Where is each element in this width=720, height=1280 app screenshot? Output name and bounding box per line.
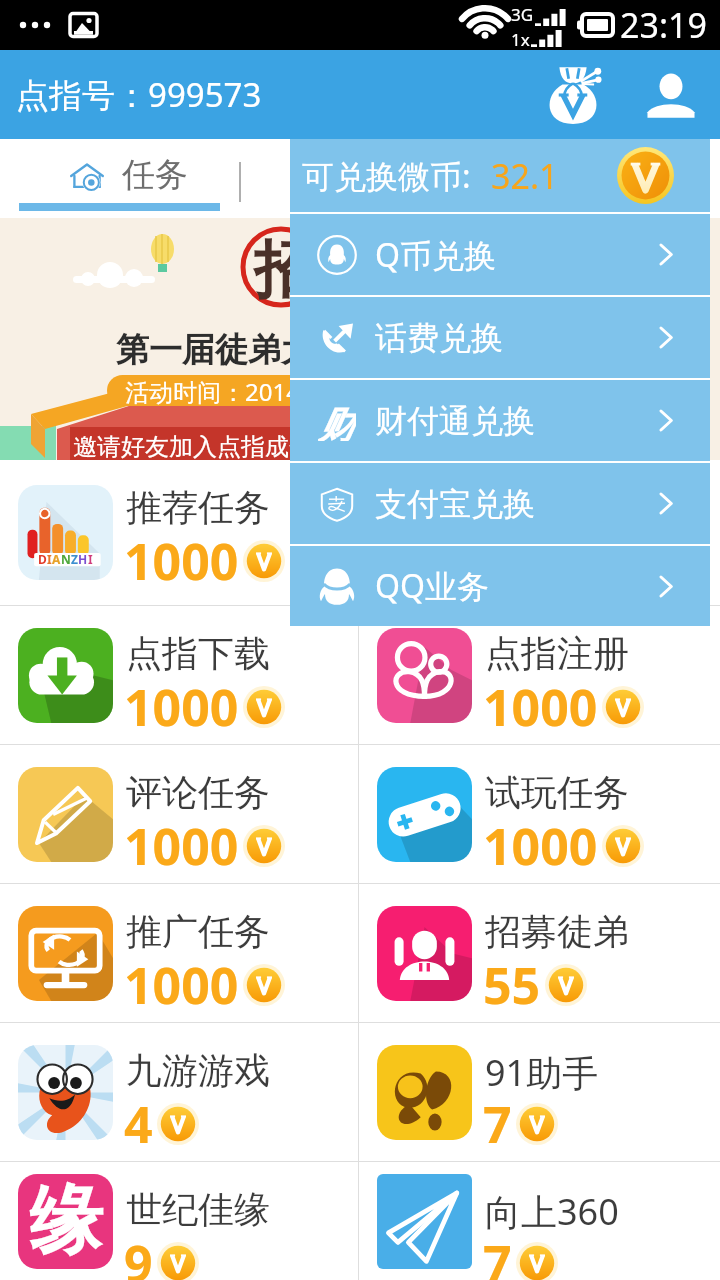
- staticText: 支付宝兑换: [375, 484, 535, 524]
- staticText: 1000: [124, 673, 239, 741]
- button[interactable]: 支付宝兑换: [290, 463, 710, 544]
- staticText: 9: [124, 1229, 153, 1280]
- staticText: 91助手: [485, 1048, 599, 1097]
- staticText: D: [38, 551, 47, 567]
- button[interactable]: 推广任务: [0, 884, 358, 1022]
- staticText: 点指注册: [485, 631, 629, 676]
- staticText: 4: [124, 1090, 153, 1158]
- staticText: 招: [254, 231, 316, 309]
- staticText: 向上360: [485, 1187, 619, 1236]
- staticText: 1000: [124, 812, 239, 880]
- staticText: 评论任务: [126, 770, 270, 815]
- staticText: 可兑换微币:: [302, 154, 471, 198]
- staticText: 试玩任务: [485, 770, 629, 815]
- button[interactable]: D: [0, 460, 358, 605]
- button[interactable]: QQ业务: [290, 546, 710, 626]
- staticText: 九游游戏: [126, 1048, 270, 1093]
- button[interactable]: 缘: [0, 1162, 358, 1280]
- staticText: 活动时间：2014年4月: [125, 375, 362, 406]
- button[interactable]: Q币兑换: [290, 214, 710, 295]
- staticText: 32.1: [491, 153, 559, 199]
- staticText: 55: [483, 951, 541, 1019]
- staticText: 第一届徒弟大赛: [116, 329, 347, 371]
- staticText: 任务: [122, 154, 188, 196]
- staticText: 财付通兑换: [375, 401, 535, 441]
- staticText: N: [61, 551, 71, 567]
- staticText: 点指号：999573: [16, 72, 262, 117]
- button[interactable]: 试玩任务: [359, 745, 720, 883]
- staticText: QQ业务: [375, 564, 489, 608]
- button[interactable]: 招募徒弟: [359, 884, 720, 1022]
- staticText: 1000: [124, 951, 239, 1019]
- staticText: 推荐任务: [126, 485, 270, 530]
- staticText: 1x: [511, 28, 530, 47]
- staticText: 点指下载: [126, 631, 270, 676]
- button[interactable]: 点指下载: [0, 606, 358, 744]
- staticText: 7: [483, 1090, 512, 1158]
- button[interactable]: 九游游戏: [0, 1023, 358, 1161]
- staticText: 招募徒弟: [485, 909, 629, 954]
- button[interactable]: My coins: [540, 58, 614, 132]
- staticText: 话费兑换: [375, 318, 503, 358]
- staticText: 23:19: [620, 2, 707, 48]
- staticText: 3G: [511, 3, 534, 26]
- staticText: 世纪佳缘: [126, 1187, 270, 1232]
- staticText: 缘: [29, 1175, 103, 1268]
- staticText: Z: [71, 551, 78, 567]
- button[interactable]: 向上360: [359, 1162, 720, 1280]
- staticText: 1000: [124, 527, 239, 595]
- button[interactable]: 点指注册: [359, 606, 720, 744]
- staticText: H: [78, 551, 88, 567]
- staticText: 财: [318, 401, 356, 441]
- staticText: 1000: [483, 812, 598, 880]
- staticText: A: [52, 551, 61, 567]
- staticText: 推广任务: [126, 909, 270, 954]
- staticText: 邀请好友加入点指成金，就有机会: [73, 432, 433, 462]
- button[interactable]: 任务: [0, 139, 239, 218]
- button[interactable]: 评论任务: [0, 745, 358, 883]
- button[interactable]: 话费兑换: [290, 297, 710, 378]
- staticText: I: [47, 551, 52, 567]
- staticText: 7: [483, 1229, 512, 1280]
- staticText: I: [88, 551, 93, 567]
- button[interactable]: 91助手: [359, 1023, 720, 1161]
- button[interactable]: Profile: [636, 60, 706, 130]
- button[interactable]: 财: [290, 380, 710, 461]
- staticText: 1000: [483, 673, 598, 741]
- staticText: Q币兑换: [375, 233, 496, 277]
